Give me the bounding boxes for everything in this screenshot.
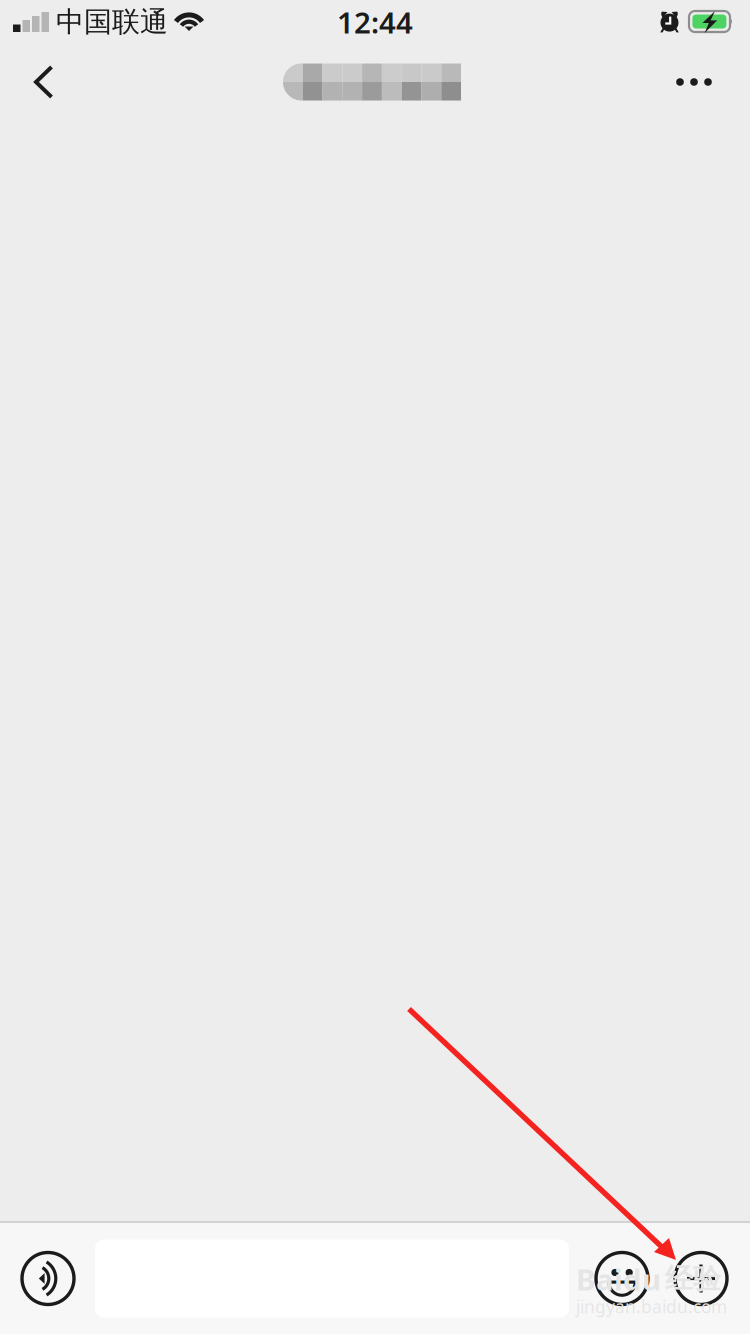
button[interactable]: More <box>664 52 724 112</box>
button[interactable]: More options <box>674 1251 728 1305</box>
staticText: Baidu <box>576 1259 661 1298</box>
staticText: 12:44 <box>337 2 413 41</box>
button[interactable]: Back <box>14 52 74 112</box>
staticText: jingyan.baidu.com <box>576 1295 727 1318</box>
staticText: 经验 <box>665 1262 721 1296</box>
staticText: 中国联通 <box>56 5 168 39</box>
button[interactable]: Voice message <box>21 1251 75 1305</box>
button[interactable]: Emoji <box>595 1251 649 1305</box>
